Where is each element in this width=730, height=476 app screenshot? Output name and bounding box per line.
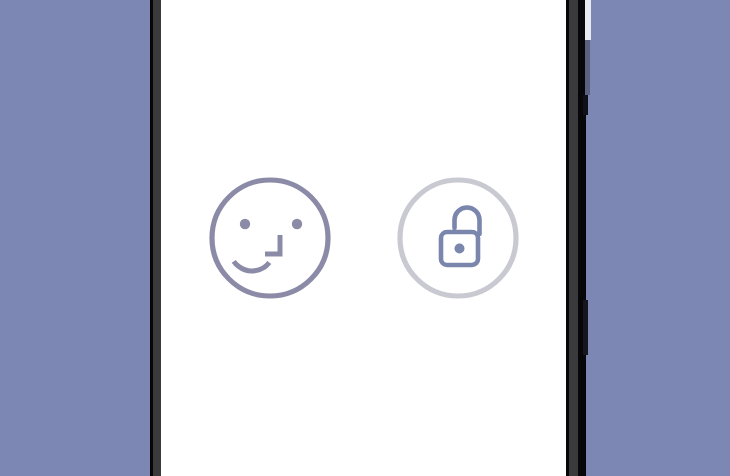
button[interactable]: Face xyxy=(212,180,328,296)
button[interactable]: Unlock xyxy=(400,180,516,296)
